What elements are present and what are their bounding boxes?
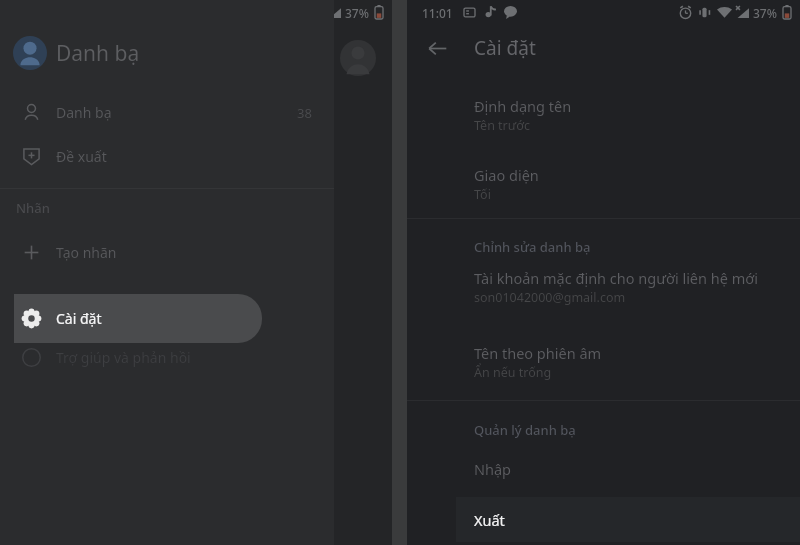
staticText: Định dạng tên (474, 96, 572, 116)
button[interactable]: Tài khoản mặc định cho người liên hệ mới (407, 262, 800, 314)
staticText: 37% (345, 5, 369, 21)
button[interactable]: Giao diện (407, 159, 800, 211)
button[interactable]: Định dạng tên (407, 90, 800, 142)
staticText: Trợ giúp và phản hồi (56, 348, 191, 367)
button[interactable]: Xuất (456, 497, 800, 542)
staticText: 38 (297, 104, 312, 122)
staticText: Cài đặt (56, 309, 102, 328)
staticText: Tên theo phiên âm (474, 343, 602, 363)
button[interactable]: Tạo nhãn (0, 232, 334, 273)
staticText: Cài đặt (474, 35, 536, 61)
staticText: Giao diện (474, 165, 539, 185)
staticText: son01042000@gmail.com (474, 289, 626, 306)
staticText: Xuất (474, 510, 505, 530)
button[interactable]: Trợ giúp và phản hồi (0, 337, 334, 378)
staticText: Tạo nhãn (56, 243, 117, 262)
staticText: Chỉnh sửa danh bạ (474, 238, 591, 256)
staticText: Danh bạ (56, 103, 112, 122)
staticText: Nhãn (16, 199, 50, 217)
staticText: Tối (474, 186, 491, 203)
button[interactable]: Back (417, 28, 457, 68)
button[interactable]: Nhập (407, 455, 800, 493)
button[interactable]: Danh bạ (0, 30, 334, 76)
staticText: Quản lý danh bạ (474, 421, 576, 439)
button[interactable]: Danh bạ (0, 92, 334, 133)
button[interactable]: Cài đặt (14, 294, 262, 343)
staticText: Tên trước (474, 117, 530, 134)
staticText: Đề xuất (56, 147, 107, 166)
staticText: Tài khoản mặc định cho người liên hệ mới (474, 268, 758, 288)
button[interactable]: Tên theo phiên âm (407, 337, 800, 389)
button[interactable]: Đề xuất (0, 136, 334, 177)
staticText: 11:01 (422, 5, 453, 21)
staticText: Danh bạ (56, 39, 140, 68)
staticText: 37% (753, 5, 777, 21)
staticText: Nhập (474, 459, 512, 479)
staticText: Ẩn nếu trống (474, 364, 552, 381)
